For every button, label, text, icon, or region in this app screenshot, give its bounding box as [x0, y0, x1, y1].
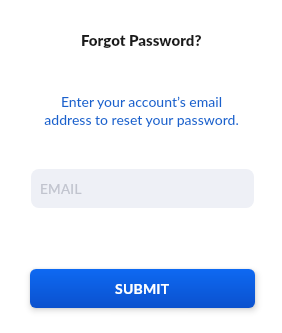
staticText: SUBMIT	[115, 280, 170, 297]
button[interactable]: SUBMIT	[30, 269, 255, 308]
staticText: EMAIL	[40, 181, 82, 197]
staticText: Forgot Password?	[81, 31, 202, 49]
staticText: Enter your account’s email address to re…	[44, 93, 239, 128]
button[interactable]: EMAIL	[31, 169, 254, 208]
